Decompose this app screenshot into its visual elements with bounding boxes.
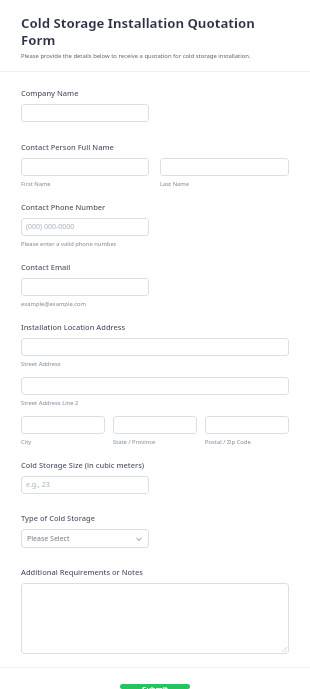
staticText: example@example.com [21, 300, 86, 308]
staticText: Cold Storage Installation Quotation Form [21, 14, 289, 48]
staticText: Contact Phone Number [21, 202, 106, 212]
button[interactable]: Please Select [21, 529, 149, 548]
button[interactable] [21, 377, 289, 395]
button[interactable] [21, 416, 105, 434]
button[interactable] [113, 416, 197, 434]
staticText: Please provide the details below to rece… [21, 52, 251, 60]
staticText: Company Name [21, 88, 79, 98]
staticText: Please Select [27, 534, 70, 544]
staticText: Contact Email [21, 262, 71, 272]
button[interactable]: (000) 000-0000 [21, 218, 149, 236]
staticText: Postal / Zip Code [205, 438, 251, 446]
staticText: State / Province [113, 438, 156, 446]
button[interactable]: e.g., 23 [21, 476, 149, 494]
staticText: Contact Person Full Name [21, 142, 114, 152]
staticText: Last Name [160, 180, 190, 188]
staticText: Please enter a valid phone number. [21, 240, 117, 248]
staticText: (000) 000-0000 [26, 222, 75, 232]
staticText: Installation Location Address [21, 322, 126, 332]
button[interactable]: Submit [120, 684, 190, 689]
staticText: Type of Cold Storage [21, 513, 95, 523]
staticText: City [21, 438, 32, 446]
staticText: Street Address Line 2 [21, 399, 79, 407]
staticText: Cold Storage Size (in cubic meters) [21, 460, 145, 470]
button[interactable] [21, 583, 289, 654]
staticText: Street Address [21, 360, 61, 368]
button[interactable] [21, 104, 149, 122]
staticText: e.g., 23 [26, 480, 50, 490]
staticText: Submit [142, 684, 168, 689]
button[interactable] [205, 416, 289, 434]
staticText: Additional Requirements or Notes [21, 567, 143, 577]
button[interactable] [21, 338, 289, 356]
button[interactable] [21, 278, 149, 296]
staticText: First Name [21, 180, 51, 188]
button[interactable] [21, 158, 149, 176]
button[interactable] [160, 158, 289, 176]
